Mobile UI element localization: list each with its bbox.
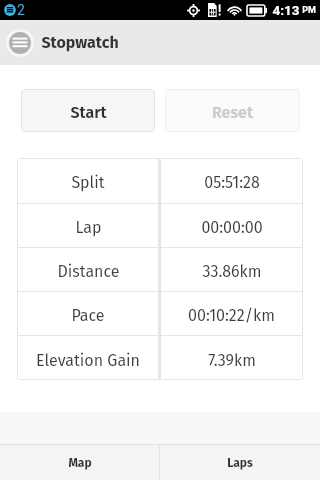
button[interactable]: Reset — [165, 89, 300, 132]
staticText: 7.39km — [208, 351, 256, 370]
staticText: 05:51:28 — [204, 173, 260, 192]
staticText: 00:10:22/km — [188, 306, 275, 325]
staticText: Lap — [75, 218, 102, 237]
staticText: 00:00:00 — [201, 218, 263, 237]
button[interactable]: Open navigation menu — [6, 29, 34, 57]
staticText: Reset — [212, 103, 253, 122]
staticText: Laps — [227, 456, 253, 470]
staticText: Map — [68, 456, 92, 470]
button[interactable]: Laps — [160, 445, 320, 480]
staticText: 4:13 — [272, 2, 300, 18]
button[interactable]: Start — [21, 89, 155, 132]
staticText: Elevation Gain — [36, 351, 140, 370]
staticText: Pace — [71, 306, 105, 325]
staticText: Distance — [57, 262, 120, 281]
button[interactable]: Map — [0, 445, 159, 480]
staticText: Split — [71, 173, 105, 192]
staticText: PM — [302, 5, 316, 16]
staticText: 33.86km — [202, 262, 262, 281]
staticText: Stopwatch — [41, 33, 119, 52]
staticText: 2 — [17, 2, 25, 18]
staticText: Start — [70, 103, 107, 122]
